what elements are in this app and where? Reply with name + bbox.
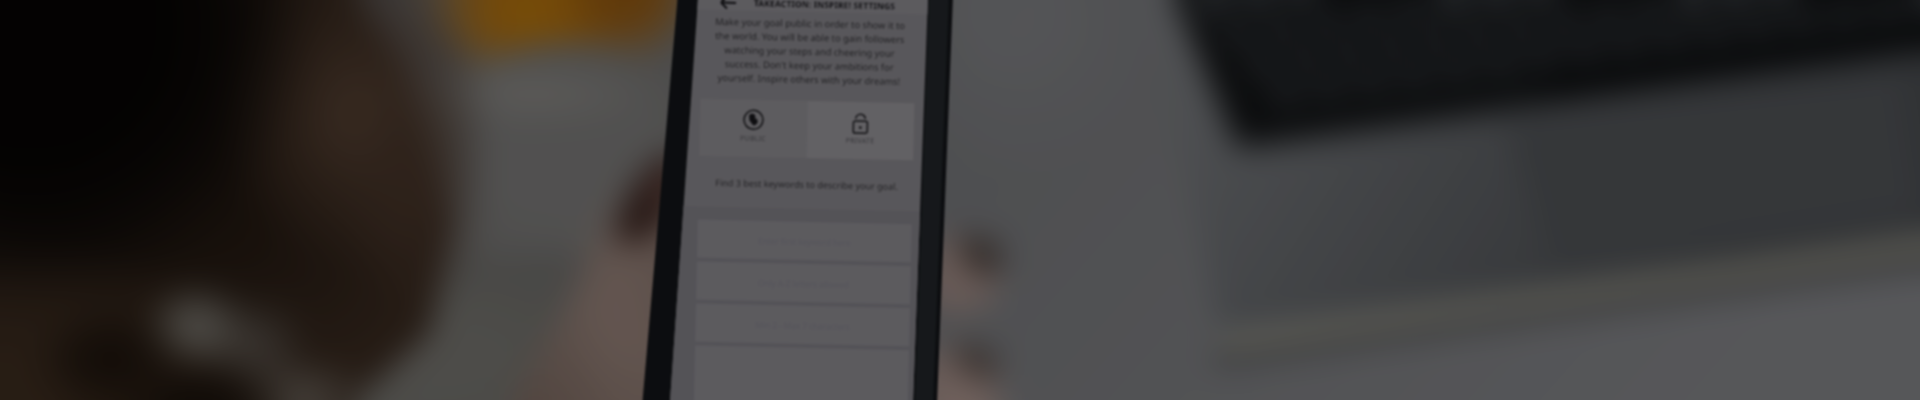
button[interactable]	[808, 102, 917, 161]
button[interactable]: Back	[705, 0, 736, 23]
button[interactable]	[700, 100, 809, 158]
